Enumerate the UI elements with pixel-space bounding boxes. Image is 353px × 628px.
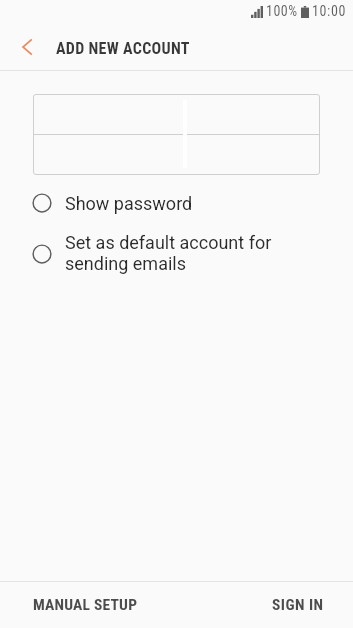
button[interactable]: Navigate up — [0, 28, 48, 70]
staticText: Show password — [65, 193, 193, 214]
staticText: SIGN IN — [272, 596, 324, 614]
button[interactable]: Show password — [0, 188, 353, 218]
button[interactable]: MANUAL SETUP — [0, 582, 158, 628]
button[interactable]: Email address — [33, 94, 320, 134]
staticText: 100% — [266, 3, 298, 19]
button[interactable]: SIGN IN — [252, 582, 353, 628]
staticText: ADD NEW ACCOUNT — [56, 39, 190, 58]
button[interactable]: Set as default account for sending email… — [0, 228, 353, 279]
staticText: 10:00 — [312, 3, 346, 19]
button[interactable]: Password — [33, 135, 320, 175]
other: Battery full — [301, 6, 309, 18]
staticText: MANUAL SETUP — [33, 596, 138, 614]
staticText: Set as default account for sending email… — [65, 232, 272, 275]
